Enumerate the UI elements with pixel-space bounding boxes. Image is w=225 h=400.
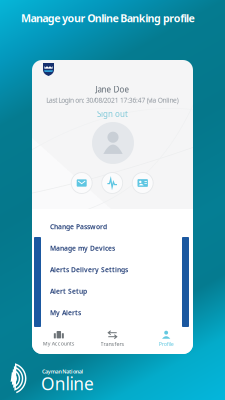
staticText: Cayman National: [42, 368, 84, 375]
button[interactable]: Activity: [101, 172, 123, 194]
button[interactable]: Alert Setup: [32, 280, 193, 302]
button[interactable]: Profile: [139, 328, 193, 350]
button[interactable]: My Alerts: [32, 302, 193, 323]
staticText: Alerts Delivery Settings: [50, 265, 128, 274]
button[interactable]: Manage my Devices: [32, 237, 193, 259]
staticText: Jane Doe: [95, 84, 129, 95]
staticText: Alert Setup: [50, 287, 87, 296]
button[interactable]: Change Password: [32, 216, 193, 237]
staticText: Manage my Devices: [50, 244, 115, 253]
button[interactable]: Contact card: [132, 172, 154, 194]
staticText: Profile: [159, 340, 174, 347]
staticText: Change Password: [50, 222, 107, 231]
staticText: My Accounts: [43, 340, 75, 347]
staticText: Transfers: [100, 340, 124, 347]
button[interactable]: Alerts Delivery Settings: [32, 259, 193, 280]
button[interactable]: Transfers: [86, 328, 139, 350]
staticText: Last Login on: 30/08/2021 17:36:47 (via …: [46, 96, 179, 104]
staticText: Manage your Online Banking profile: [21, 11, 194, 25]
staticText: Sign out: [97, 108, 128, 119]
button[interactable]: My Accounts: [32, 328, 86, 350]
button[interactable]: Sign out: [97, 104, 128, 119]
staticText: My Alerts: [50, 308, 81, 317]
button[interactable]: Messages: [71, 172, 93, 194]
staticText: Online: [41, 372, 94, 395]
